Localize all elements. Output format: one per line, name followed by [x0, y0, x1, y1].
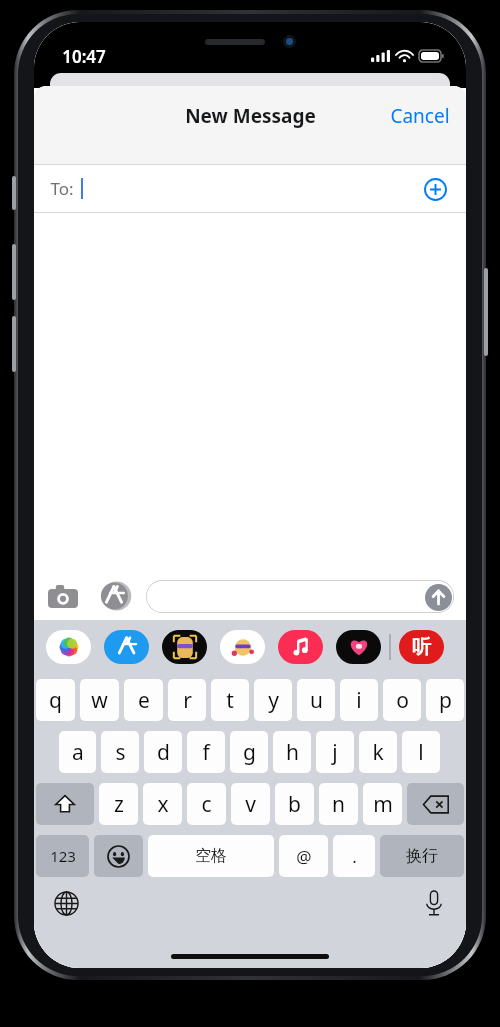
button[interactable]: Change keyboard [48, 885, 84, 921]
button[interactable]: t [211, 679, 249, 721]
button[interactable]: a [59, 731, 96, 773]
button[interactable]: u [297, 679, 335, 721]
button[interactable]: l [402, 731, 440, 773]
staticText: New Message [185, 103, 316, 129]
staticText: l [418, 738, 424, 767]
staticText: h [286, 738, 299, 767]
staticText: p [439, 686, 452, 715]
button[interactable]: s [101, 731, 139, 773]
staticText: To: [50, 177, 74, 200]
button[interactable]: 空格 [148, 835, 274, 877]
button[interactable]: App 2 [162, 630, 207, 664]
staticText: 10:47 [62, 45, 106, 68]
staticText: y [268, 686, 279, 715]
staticText: 换行 [406, 846, 438, 866]
staticText: b [288, 790, 301, 819]
staticText: 听 [412, 635, 431, 659]
staticText: n [332, 790, 345, 819]
button[interactable]: 123 [36, 835, 89, 877]
button[interactable]: 换行 [380, 835, 464, 877]
staticText: r [183, 686, 192, 715]
button[interactable]: Send [424, 583, 452, 611]
staticText: o [396, 686, 409, 715]
button[interactable]: f [187, 731, 225, 773]
staticText: i [356, 686, 362, 715]
staticText: c [201, 790, 212, 819]
button[interactable]: Send [146, 580, 454, 613]
staticText: m [373, 790, 393, 819]
button[interactable]: Dictation [416, 885, 452, 921]
button[interactable]: App 3 [220, 630, 265, 664]
button[interactable]: c [187, 783, 226, 825]
button[interactable]: x [143, 783, 182, 825]
staticText: u [310, 686, 323, 715]
button[interactable]: @ [279, 835, 328, 877]
button[interactable]: Emoji [94, 835, 143, 877]
staticText: k [372, 738, 384, 767]
button[interactable]: App 0 [46, 630, 91, 664]
button[interactable]: h [273, 731, 311, 773]
staticText: v [245, 790, 256, 819]
button[interactable]: y [254, 679, 292, 721]
staticText: t [226, 686, 234, 715]
button[interactable]: z [99, 783, 138, 825]
button[interactable]: v [231, 783, 270, 825]
staticText: q [49, 686, 62, 715]
staticText: g [243, 738, 256, 767]
staticText: x [157, 790, 169, 819]
staticText: @ [296, 845, 312, 868]
button[interactable]: App 4 [278, 630, 323, 664]
staticText: 空格 [195, 846, 227, 866]
staticText: 123 [50, 846, 76, 866]
button[interactable]: Camera [46, 579, 80, 613]
button[interactable]: o [383, 679, 421, 721]
button[interactable]: e [124, 679, 163, 721]
button[interactable]: Cancel [374, 95, 466, 137]
button[interactable]: . [333, 835, 375, 877]
staticText: s [115, 738, 126, 767]
button[interactable]: App 1 [104, 630, 149, 664]
button[interactable]: Shift [36, 783, 94, 825]
button[interactable]: w [80, 679, 119, 721]
staticText: j [332, 738, 338, 767]
button[interactable]: App Store [98, 579, 132, 613]
button[interactable]: Delete [407, 783, 464, 825]
staticText: f [202, 738, 210, 767]
button[interactable]: j [316, 731, 354, 773]
button[interactable]: q [36, 679, 75, 721]
staticText: Cancel [390, 103, 450, 129]
button[interactable]: b [275, 783, 314, 825]
staticText: e [138, 686, 150, 715]
button[interactable]: d [144, 731, 182, 773]
button[interactable]: App 5 [336, 630, 381, 664]
button[interactable]: r [168, 679, 206, 721]
button[interactable]: App 6 [399, 630, 444, 664]
button[interactable]: p [426, 679, 464, 721]
button[interactable]: g [230, 731, 268, 773]
staticText: a [72, 738, 84, 767]
button[interactable]: Add contact [418, 172, 452, 206]
staticText: z [114, 790, 124, 819]
button[interactable]: n [319, 783, 358, 825]
staticText: w [91, 686, 108, 715]
button[interactable]: k [359, 731, 397, 773]
button[interactable]: m [363, 783, 402, 825]
staticText: . [352, 845, 357, 868]
staticText: d [157, 738, 170, 767]
button[interactable]: i [340, 679, 378, 721]
